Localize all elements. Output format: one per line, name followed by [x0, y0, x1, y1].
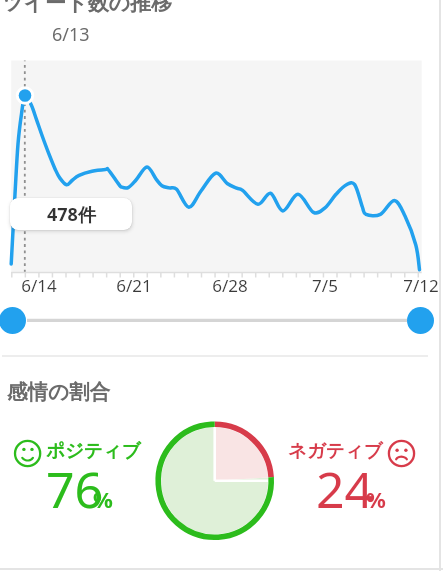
staticText: ポジティブ — [46, 439, 141, 462]
button[interactable]: 478件 — [10, 198, 132, 230]
button[interactable]: Range end handle — [407, 307, 434, 334]
button[interactable]: Negative sentiment 24 percent — [285, 437, 418, 515]
staticText: 感情の割合 — [7, 379, 110, 405]
button[interactable]: Tweet volume chart — [11, 60, 422, 278]
staticText: % — [93, 484, 113, 514]
staticText: 478件 — [47, 202, 96, 227]
button[interactable]: Positive sentiment 76 percent — [8, 437, 138, 515]
staticText: 6/13 — [52, 22, 90, 47]
staticText: ツイート数の推移 — [2, 0, 172, 16]
staticText: 7/5 — [300, 274, 350, 297]
staticText: 6/28 — [205, 274, 255, 297]
staticText: 7/12 — [396, 274, 443, 297]
staticText: 24 — [316, 455, 374, 523]
button[interactable]: Range start handle — [0, 307, 26, 334]
staticText: 6/21 — [109, 274, 159, 297]
staticText: 6/14 — [14, 274, 64, 297]
staticText: % — [366, 484, 386, 514]
staticText: 76 — [46, 455, 104, 523]
staticText: ネガティブ — [288, 439, 383, 462]
